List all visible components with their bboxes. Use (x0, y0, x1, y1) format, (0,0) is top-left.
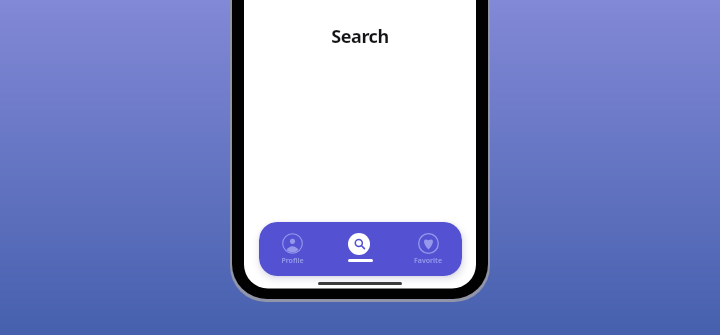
staticText: Profile (281, 256, 304, 266)
button[interactable]: Favorite (394, 222, 462, 276)
staticText: Search (244, 24, 476, 49)
button[interactable]: Search (326, 222, 394, 276)
staticText: Favorite (414, 256, 442, 266)
button[interactable]: Profile (259, 222, 326, 276)
